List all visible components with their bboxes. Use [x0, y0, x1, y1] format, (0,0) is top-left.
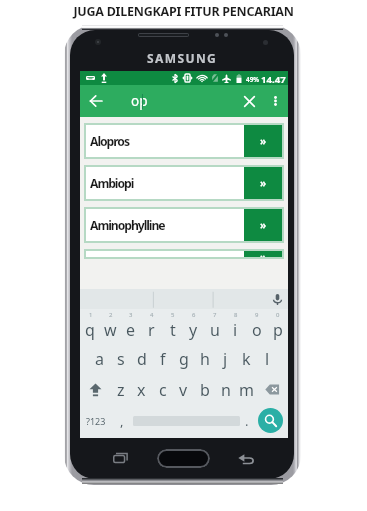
- button[interactable]: Search: [252, 405, 288, 436]
- staticText: s: [117, 348, 125, 370]
- staticText: ,: [120, 412, 124, 430]
- button[interactable]: 7: [204, 312, 225, 343]
- staticText: e: [126, 319, 136, 341]
- staticText: n: [221, 379, 231, 401]
- button[interactable]: d: [131, 343, 152, 374]
- staticText: m: [239, 379, 254, 401]
- button[interactable]: Aminophylline: [84, 207, 284, 243]
- button[interactable]: c: [152, 374, 173, 405]
- button[interactable]: h: [194, 343, 215, 374]
- button[interactable]: f: [152, 343, 173, 374]
- staticText: z: [117, 379, 125, 401]
- button[interactable]: Back: [84, 85, 108, 117]
- staticText: 0: [276, 311, 280, 319]
- staticText: Alopros: [90, 133, 129, 150]
- button[interactable]: Ambiopi: [84, 165, 284, 201]
- staticText: v: [179, 379, 188, 401]
- staticText: u: [210, 319, 220, 341]
- staticText: JUGA DILENGKAPI FITUR PENCARIAN: [0, 3, 367, 20]
- staticText: q: [85, 319, 95, 341]
- staticText: 2: [109, 311, 113, 319]
- staticText: j: [223, 348, 228, 370]
- staticText: 49%: [246, 75, 260, 84]
- button[interactable]: b: [194, 374, 215, 405]
- button[interactable]: Backspace: [257, 374, 288, 405]
- staticText: .: [245, 412, 249, 430]
- staticText: SAMSUNG: [147, 50, 218, 66]
- staticText: Aminophylline: [90, 217, 165, 234]
- staticText: l: [265, 348, 270, 370]
- button[interactable]: l: [257, 343, 278, 374]
- staticText: 4: [150, 311, 154, 319]
- button[interactable]: Voice input: [269, 289, 285, 309]
- staticText: op: [131, 92, 148, 110]
- button[interactable]: s: [110, 343, 131, 374]
- button[interactable]: 5: [162, 312, 183, 343]
- button[interactable]: m: [236, 374, 257, 405]
- staticText: o: [252, 319, 262, 341]
- staticText: a: [95, 348, 104, 370]
- staticText: b: [200, 379, 210, 401]
- button[interactable]: Space: [132, 405, 241, 436]
- staticText: g: [179, 348, 189, 370]
- staticText: »: [260, 176, 267, 190]
- button[interactable]: 4: [141, 312, 162, 343]
- staticText: x: [137, 379, 146, 401]
- staticText: i: [233, 319, 238, 341]
- button[interactable]: 2: [100, 312, 120, 343]
- button[interactable]: ,: [111, 405, 132, 436]
- button[interactable]: v: [173, 374, 194, 405]
- staticText: »: [260, 250, 267, 258]
- button[interactable]: 9: [246, 312, 267, 343]
- button[interactable]: Shift: [80, 374, 110, 405]
- button[interactable]: 1: [80, 312, 100, 343]
- staticText: c: [159, 379, 167, 401]
- staticText: w: [104, 319, 117, 341]
- button[interactable]: 3: [120, 312, 141, 343]
- staticText: 3: [129, 311, 133, 319]
- button[interactable]: Home: [157, 449, 210, 468]
- button[interactable]: a: [89, 343, 110, 374]
- button[interactable]: n: [215, 374, 236, 405]
- staticText: ?123: [86, 415, 106, 427]
- button[interactable]: »: [84, 249, 284, 259]
- staticText: h: [200, 348, 210, 370]
- button[interactable]: Alopros: [84, 123, 284, 159]
- button[interactable]: 6: [183, 312, 204, 343]
- staticText: 9: [255, 311, 259, 319]
- button[interactable]: .: [241, 405, 252, 436]
- button[interactable]: z: [110, 374, 131, 405]
- staticText: 7: [213, 311, 217, 319]
- staticText: »: [260, 134, 267, 148]
- button[interactable]: ?123: [80, 405, 111, 436]
- button[interactable]: Back: [234, 447, 258, 471]
- staticText: Ambiopi: [90, 175, 134, 192]
- staticText: 8: [234, 311, 238, 319]
- button[interactable]: 0: [267, 312, 288, 343]
- button[interactable]: k: [236, 343, 257, 374]
- staticText: f: [160, 348, 166, 370]
- staticText: 14.47: [261, 73, 286, 86]
- button[interactable]: g: [173, 343, 194, 374]
- button[interactable]: More options: [265, 85, 285, 117]
- button[interactable]: j: [215, 343, 236, 374]
- staticText: k: [242, 348, 251, 370]
- staticText: r: [148, 319, 155, 341]
- staticText: t: [170, 319, 176, 341]
- button[interactable]: 8: [225, 312, 246, 343]
- staticText: y: [189, 319, 198, 341]
- staticText: 5: [171, 311, 175, 319]
- button[interactable]: x: [131, 374, 152, 405]
- button[interactable]: Recent apps: [108, 446, 132, 470]
- staticText: »: [260, 218, 267, 232]
- staticText: p: [273, 319, 283, 341]
- button[interactable]: Clear search: [237, 85, 261, 117]
- staticText: 1: [89, 311, 93, 319]
- staticText: 6: [192, 311, 196, 319]
- staticText: d: [137, 348, 147, 370]
